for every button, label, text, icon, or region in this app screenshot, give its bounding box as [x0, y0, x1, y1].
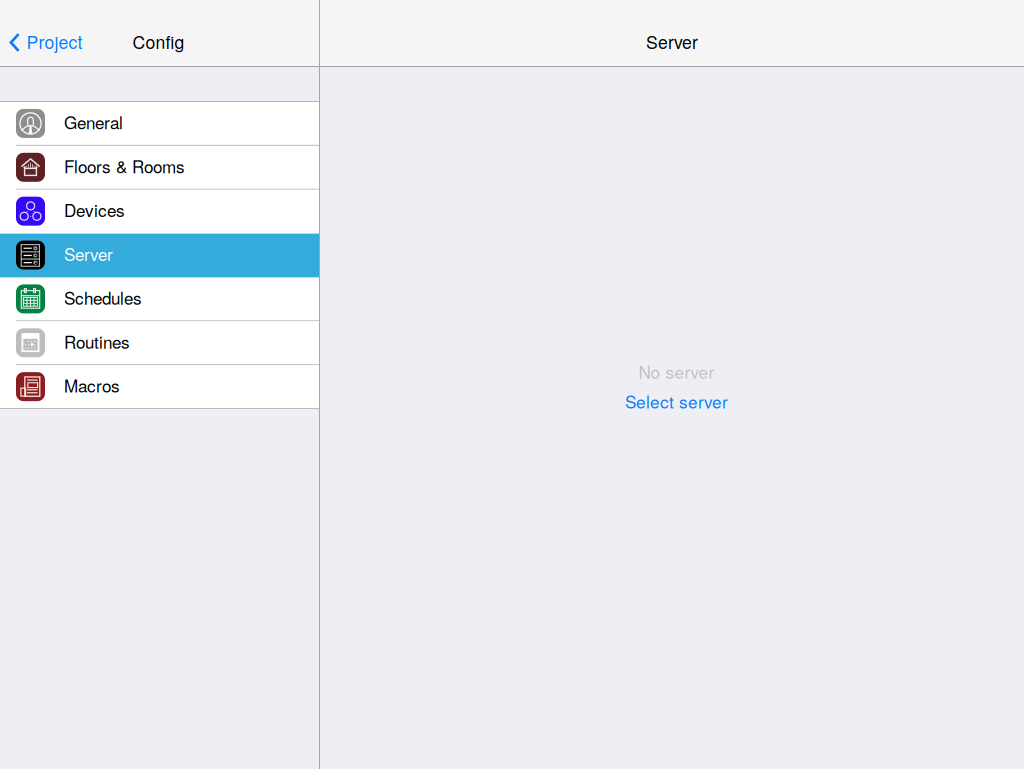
button[interactable]: General	[0, 102, 319, 146]
staticText: Select server	[625, 389, 728, 413]
staticText: General	[64, 110, 123, 134]
staticText: Project	[26, 29, 82, 54]
staticText: No server	[638, 359, 714, 384]
staticText: Macros	[64, 373, 120, 397]
staticText: Devices	[64, 197, 125, 222]
button[interactable]: Schedules	[0, 277, 319, 321]
staticText: Config	[132, 29, 184, 54]
staticText: Routines	[64, 329, 130, 353]
button[interactable]: Routines	[0, 321, 319, 365]
button[interactable]: Project	[0, 20, 92, 65]
staticText: Server	[64, 241, 113, 266]
button[interactable]: Server	[0, 234, 319, 277]
staticText: Server	[646, 29, 698, 54]
button[interactable]: Floors & Rooms	[0, 146, 319, 190]
staticText: Schedules	[64, 285, 142, 310]
staticText: Floors & Rooms	[64, 154, 185, 178]
button[interactable]: Devices	[0, 190, 319, 234]
button[interactable]: Select server	[625, 389, 728, 413]
button[interactable]: Macros	[0, 365, 319, 409]
